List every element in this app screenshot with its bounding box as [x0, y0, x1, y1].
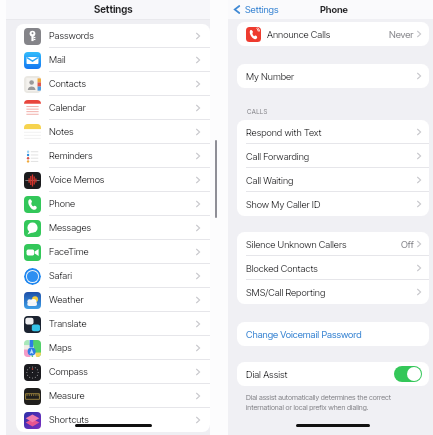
button[interactable]: Call Waiting: [237, 168, 429, 192]
button[interactable]: Silence Unknown Callers: [237, 232, 429, 256]
staticText: Weather: [49, 294, 84, 305]
staticText: Dial Assist: [246, 369, 288, 380]
staticText: Reminders: [49, 150, 93, 161]
staticText: Respond with Text: [246, 127, 322, 138]
button[interactable]: Calendar: [16, 96, 210, 120]
staticText: Voice Memos: [49, 174, 105, 185]
button[interactable]: Reminders: [16, 144, 210, 168]
staticText: Silence Unknown Callers: [246, 239, 347, 250]
staticText: CALLS: [247, 108, 268, 116]
staticText: Maps: [49, 342, 72, 353]
staticText: Show My Caller ID: [246, 199, 321, 210]
staticText: Mail: [49, 54, 66, 65]
staticText: Settings: [94, 3, 133, 15]
button[interactable]: Blocked Contacts: [237, 256, 429, 280]
button[interactable]: My Number: [237, 64, 429, 88]
staticText: Phone: [49, 198, 76, 209]
staticText: Passwords: [49, 30, 94, 41]
staticText: SMS/Call Reporting: [246, 287, 326, 298]
staticText: Measure: [49, 390, 85, 401]
button[interactable]: Show My Caller ID: [237, 192, 429, 216]
staticText: Calendar: [49, 102, 86, 113]
button[interactable]: Voice Memos: [16, 168, 210, 192]
staticText: Call Forwarding: [246, 151, 310, 162]
staticText: My Number: [246, 71, 295, 82]
button[interactable]: Translate: [16, 312, 210, 336]
button[interactable]: Notes: [16, 120, 210, 144]
button[interactable]: FaceTime: [16, 240, 210, 264]
button[interactable]: Phone: [16, 192, 210, 216]
button[interactable]: Contacts: [16, 72, 210, 96]
button[interactable]: Respond with Text: [237, 120, 429, 144]
button[interactable]: Change Voicemail Password: [237, 322, 429, 346]
button[interactable]: Announce Calls: [237, 22, 429, 46]
staticText: Shortcuts: [49, 414, 89, 425]
button[interactable]: Passwords: [16, 24, 210, 48]
staticText: Dial assist automatically determines the…: [246, 393, 391, 412]
staticText: FaceTime: [49, 246, 89, 257]
other: Back: [234, 4, 240, 15]
staticText: Blocked Contacts: [246, 263, 318, 274]
button[interactable]: Maps: [16, 336, 210, 360]
staticText: Contacts: [49, 78, 87, 89]
button[interactable]: Call Forwarding: [237, 144, 429, 168]
button[interactable]: Messages: [16, 216, 210, 240]
staticText: Phone: [320, 4, 348, 15]
staticText: Compass: [49, 366, 88, 377]
button[interactable]: Measure: [16, 384, 210, 408]
staticText: Never: [389, 29, 414, 40]
button[interactable]: Mail: [16, 48, 210, 72]
staticText: Notes: [49, 126, 74, 137]
staticText: Settings: [245, 4, 279, 15]
button[interactable]: Weather: [16, 288, 210, 312]
button[interactable]: Back: [234, 4, 279, 15]
staticText: Safari: [49, 270, 73, 281]
staticText: Announce Calls: [267, 29, 331, 40]
staticText: Call Waiting: [246, 175, 294, 186]
button[interactable]: SMS/Call Reporting: [237, 280, 429, 304]
staticText: Change Voicemail Password: [246, 329, 362, 340]
button[interactable]: Shortcuts: [16, 408, 210, 432]
button[interactable]: Compass: [16, 360, 210, 384]
button[interactable]: Safari: [16, 264, 210, 288]
staticText: Translate: [49, 318, 87, 329]
staticText: Off: [401, 239, 414, 250]
staticText: Messages: [49, 222, 91, 233]
button[interactable]: Dial Assist: [237, 362, 429, 386]
